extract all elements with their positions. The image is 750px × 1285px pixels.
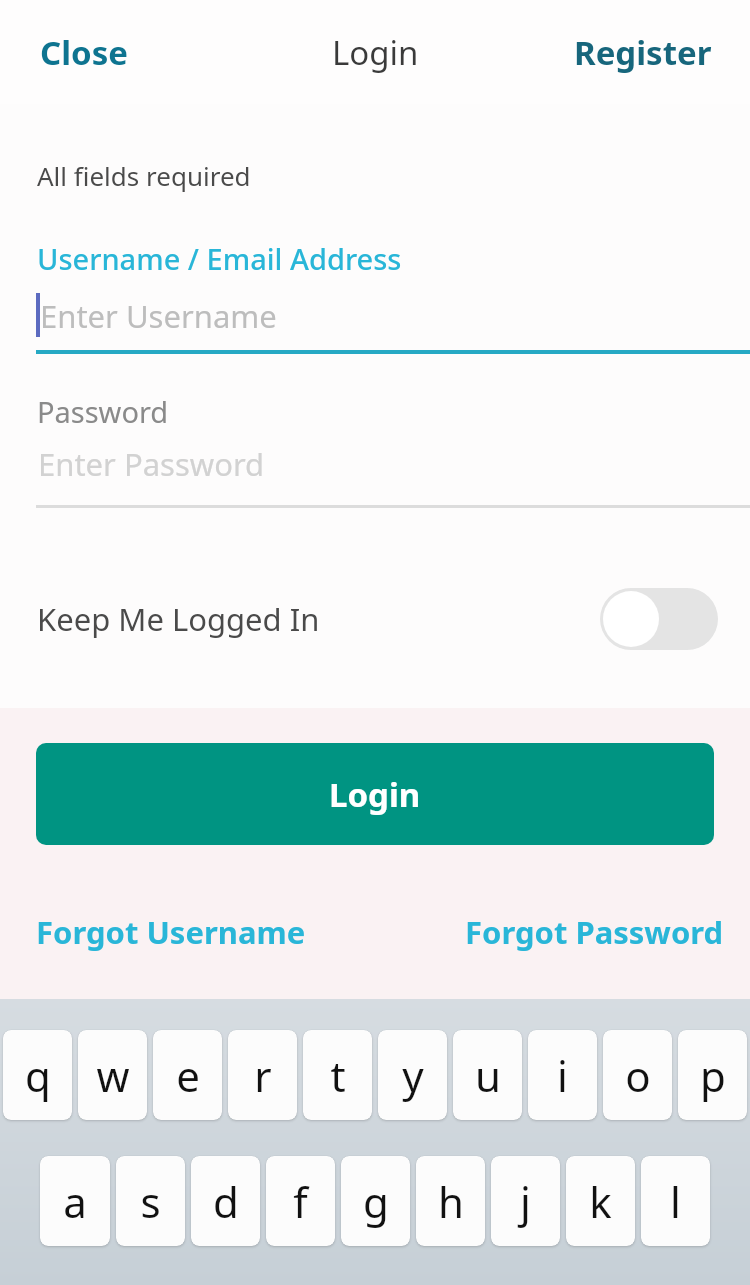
staticText: u bbox=[475, 1047, 501, 1104]
button[interactable]: h bbox=[416, 1156, 485, 1246]
staticText: w bbox=[96, 1047, 130, 1104]
button[interactable]: k bbox=[566, 1156, 635, 1246]
button[interactable]: Password bbox=[0, 392, 750, 508]
staticText: h bbox=[438, 1173, 464, 1230]
button[interactable]: l bbox=[641, 1156, 710, 1246]
staticText: l bbox=[670, 1173, 681, 1230]
staticText: Enter Password bbox=[38, 443, 265, 485]
staticText: Enter Username bbox=[40, 295, 277, 337]
staticText: p bbox=[700, 1047, 726, 1104]
button[interactable]: q bbox=[3, 1030, 72, 1120]
button[interactable]: Register bbox=[556, 20, 730, 85]
staticText: o bbox=[625, 1047, 651, 1104]
button[interactable]: u bbox=[453, 1030, 522, 1120]
button[interactable]: r bbox=[228, 1030, 297, 1120]
button[interactable]: a bbox=[40, 1156, 110, 1246]
staticText: f bbox=[293, 1173, 308, 1230]
staticText: i bbox=[557, 1047, 568, 1104]
button[interactable]: Close bbox=[22, 20, 146, 85]
button[interactable]: Forgot Username bbox=[20, 903, 322, 961]
staticText: s bbox=[140, 1173, 161, 1230]
button[interactable]: Keep Me Logged In bbox=[0, 574, 750, 664]
button[interactable]: w bbox=[78, 1030, 147, 1120]
button[interactable]: o bbox=[603, 1030, 672, 1120]
staticText: Keep Me Logged In bbox=[37, 598, 320, 640]
staticText: Close bbox=[40, 30, 128, 75]
staticText: d bbox=[213, 1173, 239, 1230]
staticText: Username / Email Address bbox=[37, 239, 402, 278]
button[interactable]: Login bbox=[36, 743, 714, 845]
staticText: Forgot Username bbox=[36, 911, 306, 953]
button[interactable]: y bbox=[378, 1030, 447, 1120]
staticText: a bbox=[63, 1173, 87, 1230]
button[interactable]: p bbox=[678, 1030, 747, 1120]
button[interactable]: i bbox=[528, 1030, 597, 1120]
staticText: Register bbox=[574, 30, 712, 75]
button[interactable]: d bbox=[191, 1156, 260, 1246]
staticText: e bbox=[176, 1047, 200, 1104]
other: Keep me logged in toggle bbox=[600, 588, 718, 650]
staticText: Login bbox=[332, 30, 419, 75]
button[interactable]: Forgot Password bbox=[449, 903, 740, 961]
staticText: y bbox=[402, 1047, 424, 1104]
staticText: All fields required bbox=[37, 158, 251, 193]
staticText: g bbox=[363, 1173, 389, 1230]
staticText: j bbox=[520, 1173, 531, 1230]
button[interactable]: e bbox=[153, 1030, 222, 1120]
staticText: q bbox=[25, 1047, 51, 1104]
staticText: t bbox=[330, 1047, 346, 1104]
button[interactable]: f bbox=[266, 1156, 335, 1246]
staticText: Forgot Password bbox=[465, 911, 724, 953]
button[interactable]: j bbox=[491, 1156, 560, 1246]
button[interactable]: g bbox=[341, 1156, 410, 1246]
staticText: k bbox=[589, 1173, 612, 1230]
staticText: Password bbox=[37, 392, 169, 431]
button[interactable]: Username / Email Address bbox=[0, 239, 750, 354]
staticText: r bbox=[254, 1047, 272, 1104]
button[interactable]: s bbox=[116, 1156, 185, 1246]
staticText: Login bbox=[329, 772, 421, 817]
button[interactable]: t bbox=[303, 1030, 372, 1120]
